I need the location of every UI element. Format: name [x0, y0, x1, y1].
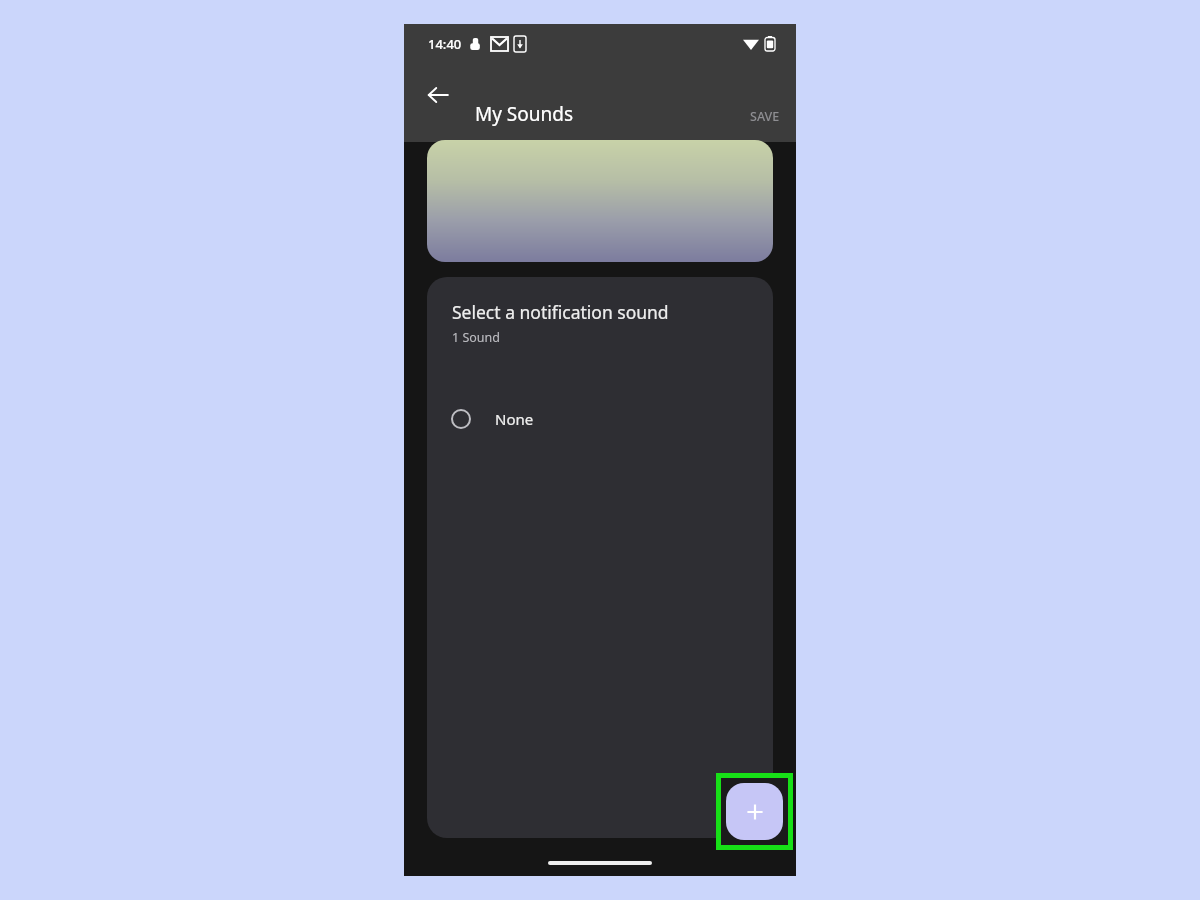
staticText: 14:40 — [428, 35, 462, 53]
staticText: My Sounds — [475, 101, 574, 127]
button[interactable]: Add sound — [726, 783, 783, 840]
button[interactable] — [427, 140, 773, 262]
staticText: SAVE — [750, 108, 780, 125]
button[interactable]: SAVE — [744, 104, 786, 129]
staticText: Select a notification sound — [452, 300, 669, 324]
staticText: None — [495, 409, 534, 429]
staticText: 1 Sound — [452, 329, 500, 346]
button[interactable]: Back — [414, 71, 462, 119]
button[interactable]: None — [427, 394, 773, 444]
